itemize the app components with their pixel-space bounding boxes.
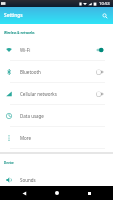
staticText: Wi-Fi	[20, 47, 31, 53]
staticText: Data usage	[20, 113, 44, 119]
staticText: Bluetooth	[20, 69, 41, 75]
button[interactable]: Back	[15, 186, 33, 200]
button[interactable]: Bluetooth	[0, 61, 113, 83]
button[interactable]: Wi-Fi	[0, 39, 113, 61]
staticText: 10:53	[99, 1, 110, 7]
button[interactable]: Cellular networks	[0, 83, 113, 105]
staticText: Wireless & networks	[4, 31, 35, 35]
staticText: Sounds	[20, 177, 36, 183]
button[interactable]: Search	[99, 10, 110, 21]
staticText: Device	[4, 161, 14, 165]
button[interactable]: Sounds	[0, 169, 113, 191]
button[interactable]: More	[0, 127, 113, 149]
button[interactable]: Data usage	[0, 105, 113, 127]
staticText: More	[20, 135, 32, 141]
staticText: Settings	[4, 12, 23, 19]
button[interactable]: Home	[48, 186, 66, 200]
button[interactable]: Recents	[80, 186, 98, 200]
staticText: Cellular networks	[20, 91, 57, 97]
